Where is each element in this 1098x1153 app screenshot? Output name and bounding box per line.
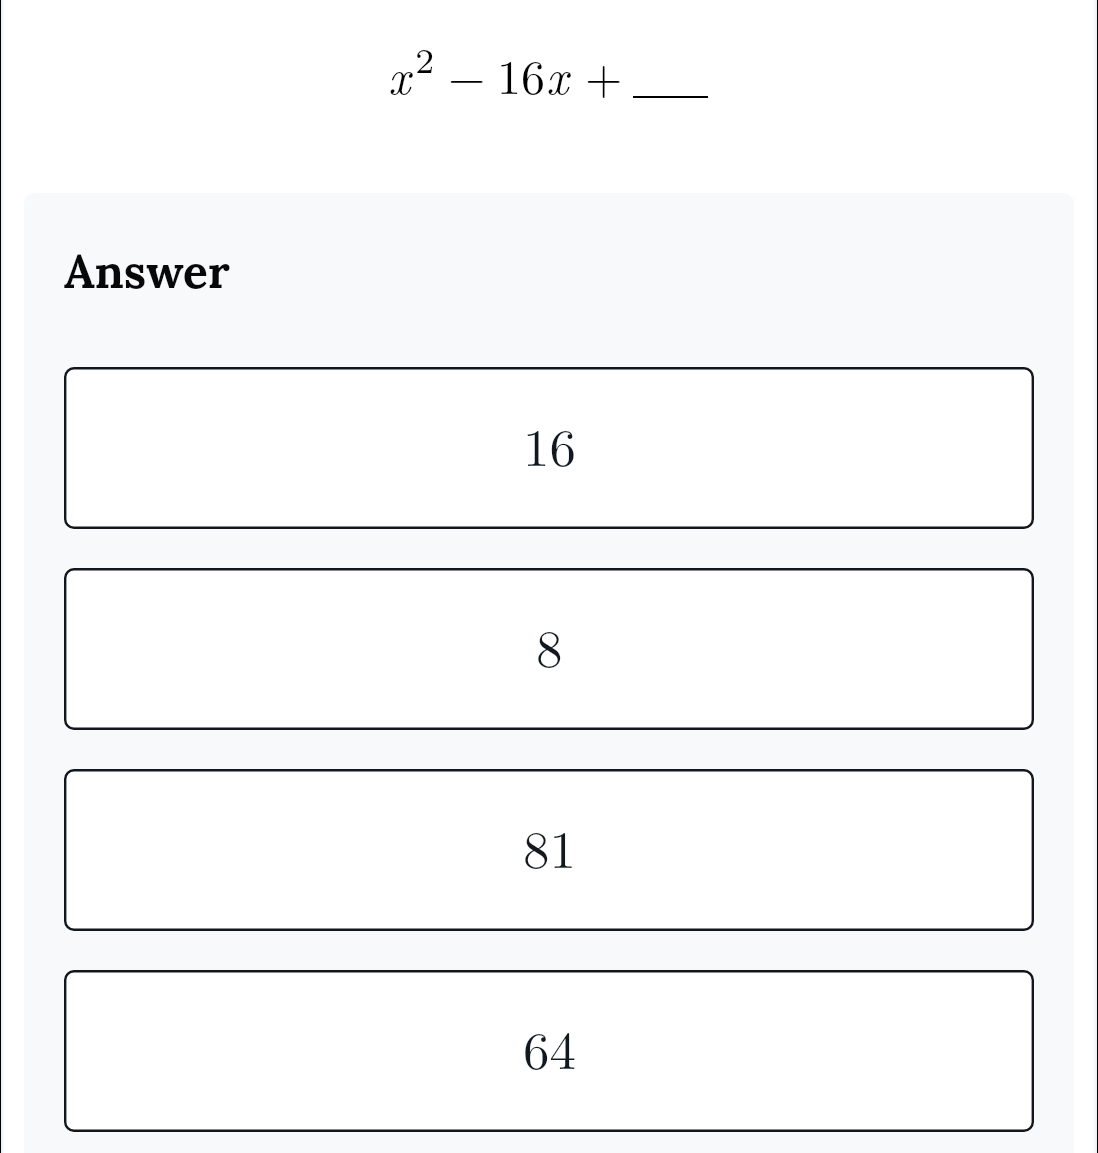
button[interactable]: 81 — [64, 769, 1034, 931]
staticText: x — [388, 40, 411, 108]
staticText: Answer — [64, 242, 230, 301]
button[interactable]: 8 — [64, 568, 1034, 730]
button[interactable]: 64 — [64, 970, 1034, 1132]
staticText: x — [546, 40, 569, 108]
staticText: − — [448, 40, 486, 108]
staticText: 81 — [523, 808, 576, 883]
staticText: 16 — [523, 406, 576, 481]
staticText: + — [585, 40, 623, 108]
staticText: 64 — [523, 1009, 576, 1084]
staticText: 8 — [536, 607, 563, 682]
staticText: 16 — [497, 40, 546, 108]
other: x squared minus 16 x plus blank — [0, 0, 1098, 193]
staticText: 2 — [415, 35, 435, 83]
button[interactable]: 16 — [64, 367, 1034, 529]
